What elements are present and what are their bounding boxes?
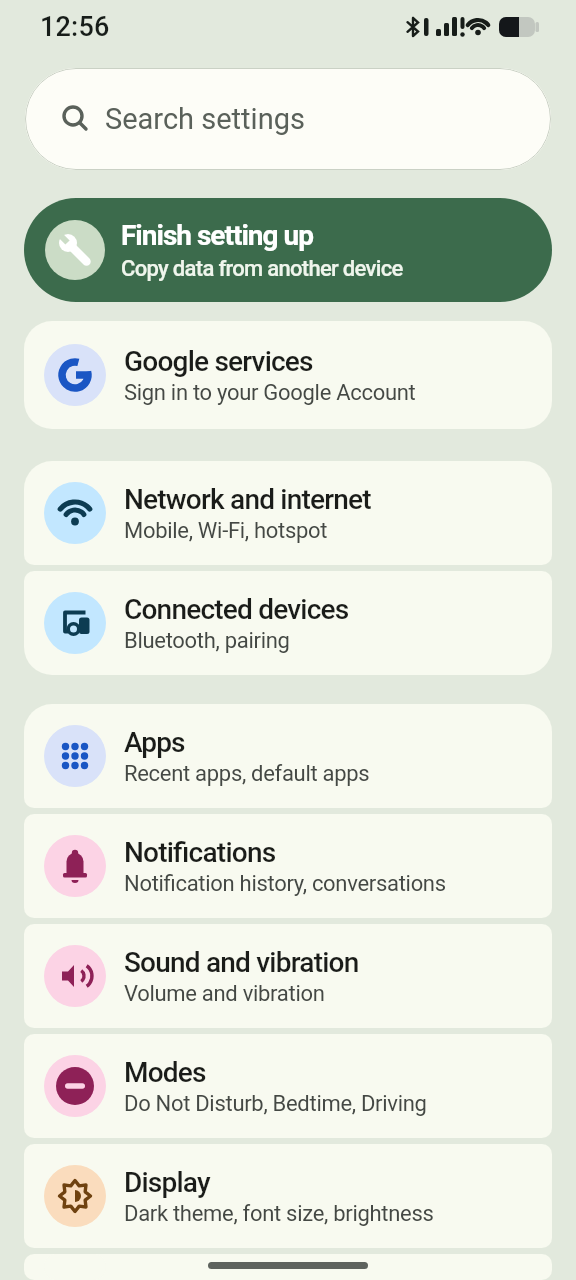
- staticText: Notification history, conversations: [124, 871, 446, 897]
- staticText: Bluetooth, pairing: [124, 628, 290, 654]
- staticText: Sign in to your Google Account: [124, 380, 416, 406]
- button[interactable]: [24, 1254, 552, 1280]
- staticText: Notifications: [124, 836, 276, 869]
- button[interactable]: Network and internet: [24, 461, 552, 565]
- button[interactable]: Connected devices: [24, 571, 552, 675]
- button[interactable]: Modes: [24, 1034, 552, 1138]
- staticText: Mobile, Wi-Fi, hotspot: [124, 518, 328, 544]
- staticText: Recent apps, default apps: [124, 761, 370, 787]
- button[interactable]: Search settings: [25, 68, 551, 170]
- button[interactable]: Sound and vibration: [24, 924, 552, 1028]
- staticText: Sound and vibration: [124, 946, 359, 979]
- button[interactable]: Notifications: [24, 814, 552, 918]
- button[interactable]: Apps: [24, 704, 552, 808]
- staticText: Do Not Disturb, Bedtime, Driving: [124, 1091, 427, 1117]
- staticText: Volume and vibration: [124, 981, 325, 1007]
- staticText: Search settings: [105, 102, 305, 136]
- staticText: 12:56: [40, 11, 110, 43]
- button[interactable]: Google services: [24, 321, 552, 429]
- staticText: Google services: [124, 345, 313, 378]
- staticText: Finish setting up: [121, 219, 313, 252]
- staticText: Network and internet: [124, 483, 371, 516]
- staticText: Connected devices: [124, 593, 349, 626]
- staticText: Copy data from another device: [121, 256, 403, 282]
- staticText: Dark theme, font size, brightness: [124, 1201, 434, 1227]
- staticText: Display: [124, 1166, 210, 1199]
- staticText: Apps: [124, 726, 185, 759]
- button[interactable]: Display: [24, 1144, 552, 1248]
- button[interactable]: Finish setting up: [24, 198, 552, 302]
- staticText: Modes: [124, 1056, 206, 1089]
